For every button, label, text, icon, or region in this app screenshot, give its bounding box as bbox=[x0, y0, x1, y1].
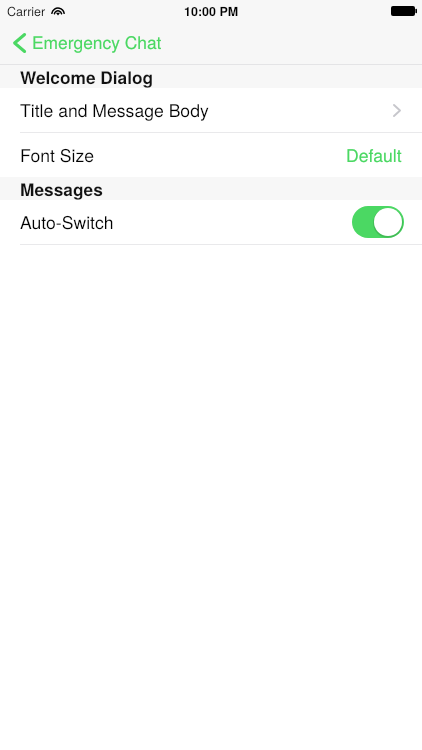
button[interactable]: Title and Message Body bbox=[0, 88, 422, 132]
staticText: Emergency Chat bbox=[32, 29, 162, 54]
staticText: Carrier bbox=[7, 2, 46, 20]
staticText: Auto-Switch bbox=[20, 209, 114, 234]
button[interactable]: Font Size bbox=[0, 133, 422, 177]
button[interactable]: Back to Emergency Chat bbox=[0, 25, 170, 58]
staticText: Font Size bbox=[20, 142, 94, 167]
staticText: Default bbox=[346, 142, 402, 167]
staticText: Title and Message Body bbox=[20, 97, 209, 122]
staticText: Welcome Dialog bbox=[20, 65, 154, 88]
staticText: 10:00 PM bbox=[184, 2, 239, 20]
button[interactable]: Auto-Switch toggle, on bbox=[352, 206, 404, 238]
staticText: Messages bbox=[20, 177, 103, 200]
